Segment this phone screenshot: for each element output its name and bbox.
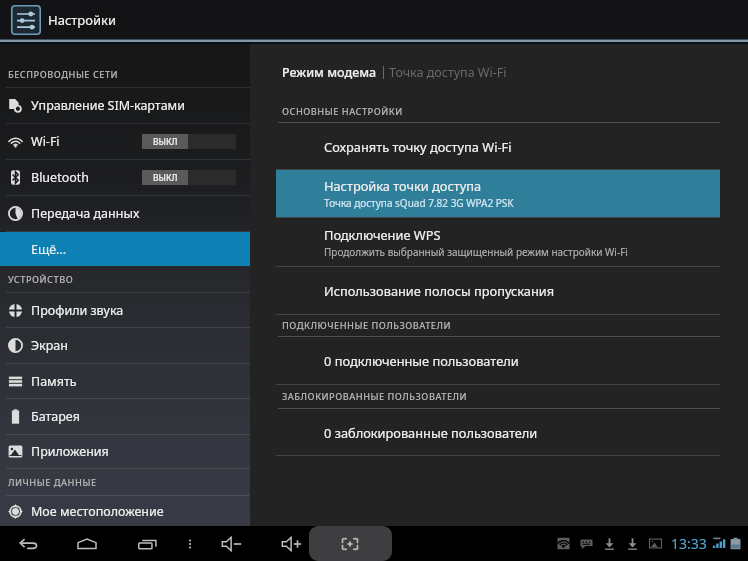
button[interactable]: Режим модема — [282, 64, 383, 81]
staticText: БЕСПРОВОДНЫЕ СЕТИ — [8, 68, 119, 81]
button[interactable]: Настройка точки доступа — [276, 170, 720, 217]
button[interactable]: 0 заблокированные пользователи — [276, 409, 720, 455]
staticText: ЗАБЛОКИРОВАННЫЕ ПОЛЬЗОВАТЕЛИ — [282, 390, 468, 403]
button[interactable]: Menu — [173, 526, 207, 561]
staticText: Подключение WPS — [324, 226, 441, 243]
button[interactable]: Back — [12, 526, 46, 561]
button[interactable]: Приложения — [0, 435, 250, 468]
staticText: Сохранять точку доступа Wi-Fi — [324, 138, 512, 155]
staticText: УСТРОЙСТВО — [8, 273, 74, 286]
button[interactable]: Wi-Fi — [0, 124, 250, 159]
staticText: Bluetooth — [31, 169, 90, 186]
button[interactable]: Recents — [131, 526, 165, 561]
staticText: Экран — [31, 337, 68, 354]
staticText: Батарея — [31, 408, 80, 425]
staticText: Настройки — [48, 11, 117, 29]
button[interactable]: 0 подключенные пользователи — [276, 337, 720, 384]
staticText: 0 заблокированные пользователи — [324, 424, 538, 441]
button[interactable]: Точка доступа Wi-Fi — [384, 64, 507, 81]
button[interactable]: Батарея — [0, 399, 250, 434]
button[interactable]: Профили звука — [0, 293, 250, 327]
staticText: Точка доступа sQuad 7.82 3G WPA2 PSK — [324, 196, 514, 210]
staticText: ЛИЧНЫЕ ДАННЫЕ — [8, 476, 97, 489]
staticText: 0 подключенные пользователи — [324, 352, 519, 369]
button[interactable]: Передача данных — [0, 196, 250, 231]
button[interactable]: Status and notifications — [557, 526, 748, 561]
staticText: Мое местоположение — [31, 503, 164, 520]
staticText: Продолжить выбранный защищенный режим на… — [324, 245, 628, 259]
button[interactable]: Сохранять точку доступа Wi-Fi — [276, 123, 720, 169]
button[interactable]: Home — [70, 526, 104, 561]
staticText: Память — [31, 373, 77, 390]
button[interactable]: Управление SIM-картами — [0, 88, 250, 123]
staticText: Профили звука — [31, 302, 124, 319]
button[interactable]: Screenshot — [333, 526, 367, 561]
staticText: ОСНОВНЫЕ НАСТРОЙКИ — [282, 105, 403, 118]
button[interactable]: Память — [0, 364, 250, 398]
staticText: Передача данных — [31, 205, 140, 222]
button[interactable]: Settings — [11, 5, 41, 35]
staticText: Приложения — [31, 443, 109, 460]
button[interactable]: Мое местоположение — [0, 496, 250, 526]
staticText: Настройка точки доступа — [324, 177, 482, 194]
staticText: ВЫКЛ — [153, 172, 178, 184]
staticText: Ещё... — [31, 241, 67, 258]
staticText: Режим модема — [282, 64, 377, 81]
button[interactable]: Использование полосы пропускания — [276, 267, 720, 314]
staticText: Wi-Fi — [31, 133, 60, 150]
staticText: Точка доступа Wi-Fi — [389, 64, 507, 81]
staticText: ПОДКЛЮЧЕННЫЕ ПОЛЬЗОВАТЕЛИ — [282, 319, 451, 332]
staticText: Управление SIM-картами — [31, 97, 185, 114]
staticText: ВЫКЛ — [153, 136, 178, 148]
button[interactable]: Подключение WPS — [276, 218, 720, 266]
button[interactable]: Volume down — [215, 526, 249, 561]
button[interactable]: Ещё... — [0, 232, 250, 266]
staticText: 13:33 — [671, 534, 707, 553]
staticText: Использование полосы пропускания — [324, 282, 555, 299]
button[interactable]: Volume up — [275, 526, 309, 561]
button[interactable]: Экран — [0, 328, 250, 363]
button[interactable]: Bluetooth — [0, 160, 250, 195]
